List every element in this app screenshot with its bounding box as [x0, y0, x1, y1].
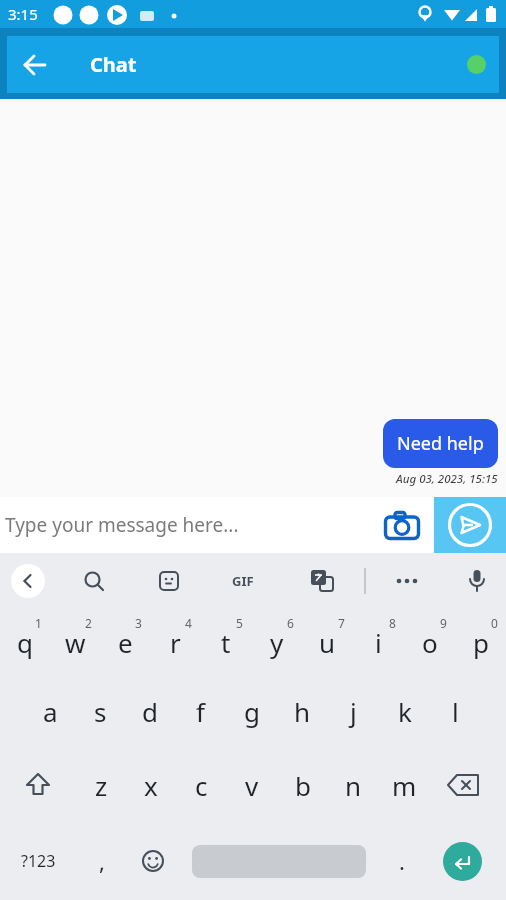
button[interactable]: x	[126, 748, 176, 822]
staticText: t	[221, 625, 231, 660]
button[interactable]	[448, 553, 506, 609]
button[interactable]: a	[25, 675, 75, 748]
staticText: 5	[236, 615, 243, 631]
staticText: w	[65, 625, 86, 660]
button[interactable]	[280, 553, 364, 609]
button[interactable]: d	[125, 675, 175, 748]
staticText: 2	[85, 615, 92, 631]
staticText: Aug 03, 2023, 15:15	[396, 471, 498, 487]
staticText: r	[170, 625, 181, 660]
staticText: 6	[287, 615, 294, 631]
staticText: b	[295, 768, 311, 803]
button[interactable]: l	[430, 675, 481, 748]
staticText: n	[345, 768, 362, 803]
button[interactable]	[127, 822, 178, 900]
staticText: 0	[491, 615, 498, 631]
button[interactable]: y	[251, 609, 302, 675]
button[interactable]: n	[328, 748, 379, 822]
button[interactable]: ,	[76, 822, 127, 900]
staticText: y	[270, 625, 284, 660]
staticText: 9	[440, 615, 447, 631]
button[interactable]	[7, 37, 63, 93]
button[interactable]: i	[353, 609, 404, 675]
staticText: l	[452, 694, 459, 729]
button[interactable]	[430, 748, 506, 822]
staticText: a	[43, 694, 58, 729]
staticText: k	[398, 694, 412, 729]
staticText: v	[245, 768, 259, 803]
button[interactable]: c	[176, 748, 226, 822]
staticText: e	[118, 625, 133, 660]
staticText: 7	[338, 615, 345, 631]
staticText: 4	[185, 615, 192, 631]
button[interactable]: .	[374, 822, 430, 900]
button[interactable]: m	[379, 748, 430, 822]
button[interactable]	[132, 553, 206, 609]
button[interactable]	[0, 748, 76, 822]
staticText: ,	[99, 846, 105, 876]
button[interactable]: o	[404, 609, 455, 675]
button[interactable]	[366, 553, 448, 609]
button[interactable]: h	[277, 675, 328, 748]
staticText: h	[294, 694, 311, 729]
button[interactable]: r	[150, 609, 200, 675]
staticText: c	[195, 768, 208, 803]
staticText: q	[17, 625, 33, 660]
staticText: f	[196, 694, 205, 729]
button[interactable]: u	[302, 609, 353, 675]
staticText: GIF	[232, 572, 254, 590]
staticText: Need help	[397, 431, 484, 456]
staticText: d	[142, 694, 158, 729]
button[interactable]	[467, 55, 486, 74]
staticText: 3:15	[8, 4, 38, 24]
button[interactable]: ?123	[0, 822, 76, 900]
button[interactable]	[434, 497, 506, 553]
staticText: ?123	[21, 850, 56, 872]
staticText: s	[94, 694, 107, 729]
staticText: i	[375, 625, 382, 660]
staticText: o	[422, 625, 438, 660]
staticText: m	[392, 768, 417, 803]
button[interactable]: e	[100, 609, 150, 675]
button[interactable]: z	[76, 748, 126, 822]
staticText: 8	[389, 615, 396, 631]
staticText: Chat	[90, 51, 137, 78]
button[interactable]: g	[226, 675, 277, 748]
button[interactable]	[430, 822, 506, 900]
staticText: p	[473, 625, 489, 660]
button[interactable]: s	[75, 675, 125, 748]
staticText: j	[350, 694, 357, 729]
staticText: z	[95, 768, 108, 803]
button[interactable]	[178, 822, 374, 900]
button[interactable]: k	[379, 675, 430, 748]
staticText: x	[144, 768, 158, 803]
button[interactable]: j	[328, 675, 379, 748]
button[interactable]: t	[200, 609, 251, 675]
button[interactable]: Type your message here...	[5, 512, 384, 538]
button[interactable]	[56, 553, 132, 609]
button[interactable]	[384, 497, 434, 553]
button[interactable]: q	[0, 609, 50, 675]
button[interactable]: f	[175, 675, 226, 748]
staticText: 3	[135, 615, 142, 631]
button[interactable]: v	[226, 748, 277, 822]
button[interactable]: w	[50, 609, 100, 675]
button[interactable]: Need help	[383, 419, 498, 468]
staticText: 1	[35, 615, 42, 631]
button[interactable]: b	[277, 748, 328, 822]
staticText: u	[319, 625, 336, 660]
button[interactable]: GIF	[206, 553, 280, 609]
button[interactable]	[0, 553, 56, 609]
staticText: .	[399, 846, 405, 876]
button[interactable]: p	[455, 609, 506, 675]
staticText: g	[244, 694, 260, 729]
